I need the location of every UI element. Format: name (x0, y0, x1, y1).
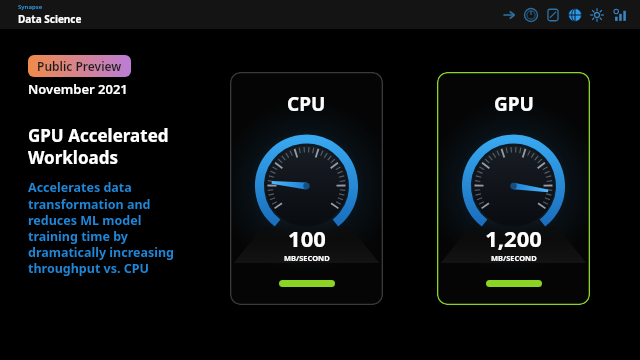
staticText: MB/SECOND (491, 253, 537, 263)
staticText: GPU (494, 91, 534, 117)
button[interactable]: Analytics (608, 4, 630, 26)
staticText: 1,200 (485, 223, 542, 253)
staticText: MB/SECOND (284, 253, 330, 263)
button[interactable]: CPU (230, 72, 383, 305)
button[interactable]: Throughput bar (486, 280, 542, 287)
staticText: Accelerates data transformation and redu… (28, 179, 174, 276)
button[interactable]: Public Preview (28, 55, 131, 77)
button[interactable]: Monitor (520, 4, 542, 26)
button[interactable]: GPU (437, 72, 590, 305)
button[interactable]: Network (564, 4, 586, 26)
button[interactable]: Run (498, 4, 520, 26)
staticText: Data Science (18, 12, 82, 26)
button[interactable]: Data (542, 4, 564, 26)
staticText: November 2021 (28, 80, 128, 98)
staticText: Public Preview (37, 58, 122, 74)
button[interactable]: Settings (586, 4, 608, 26)
staticText: CPU (287, 91, 326, 117)
staticText: Synapse (18, 3, 43, 11)
staticText: 100 (288, 223, 326, 253)
staticText: GPU Accelerated Workloads (28, 124, 169, 169)
button[interactable]: Throughput bar (279, 280, 335, 287)
